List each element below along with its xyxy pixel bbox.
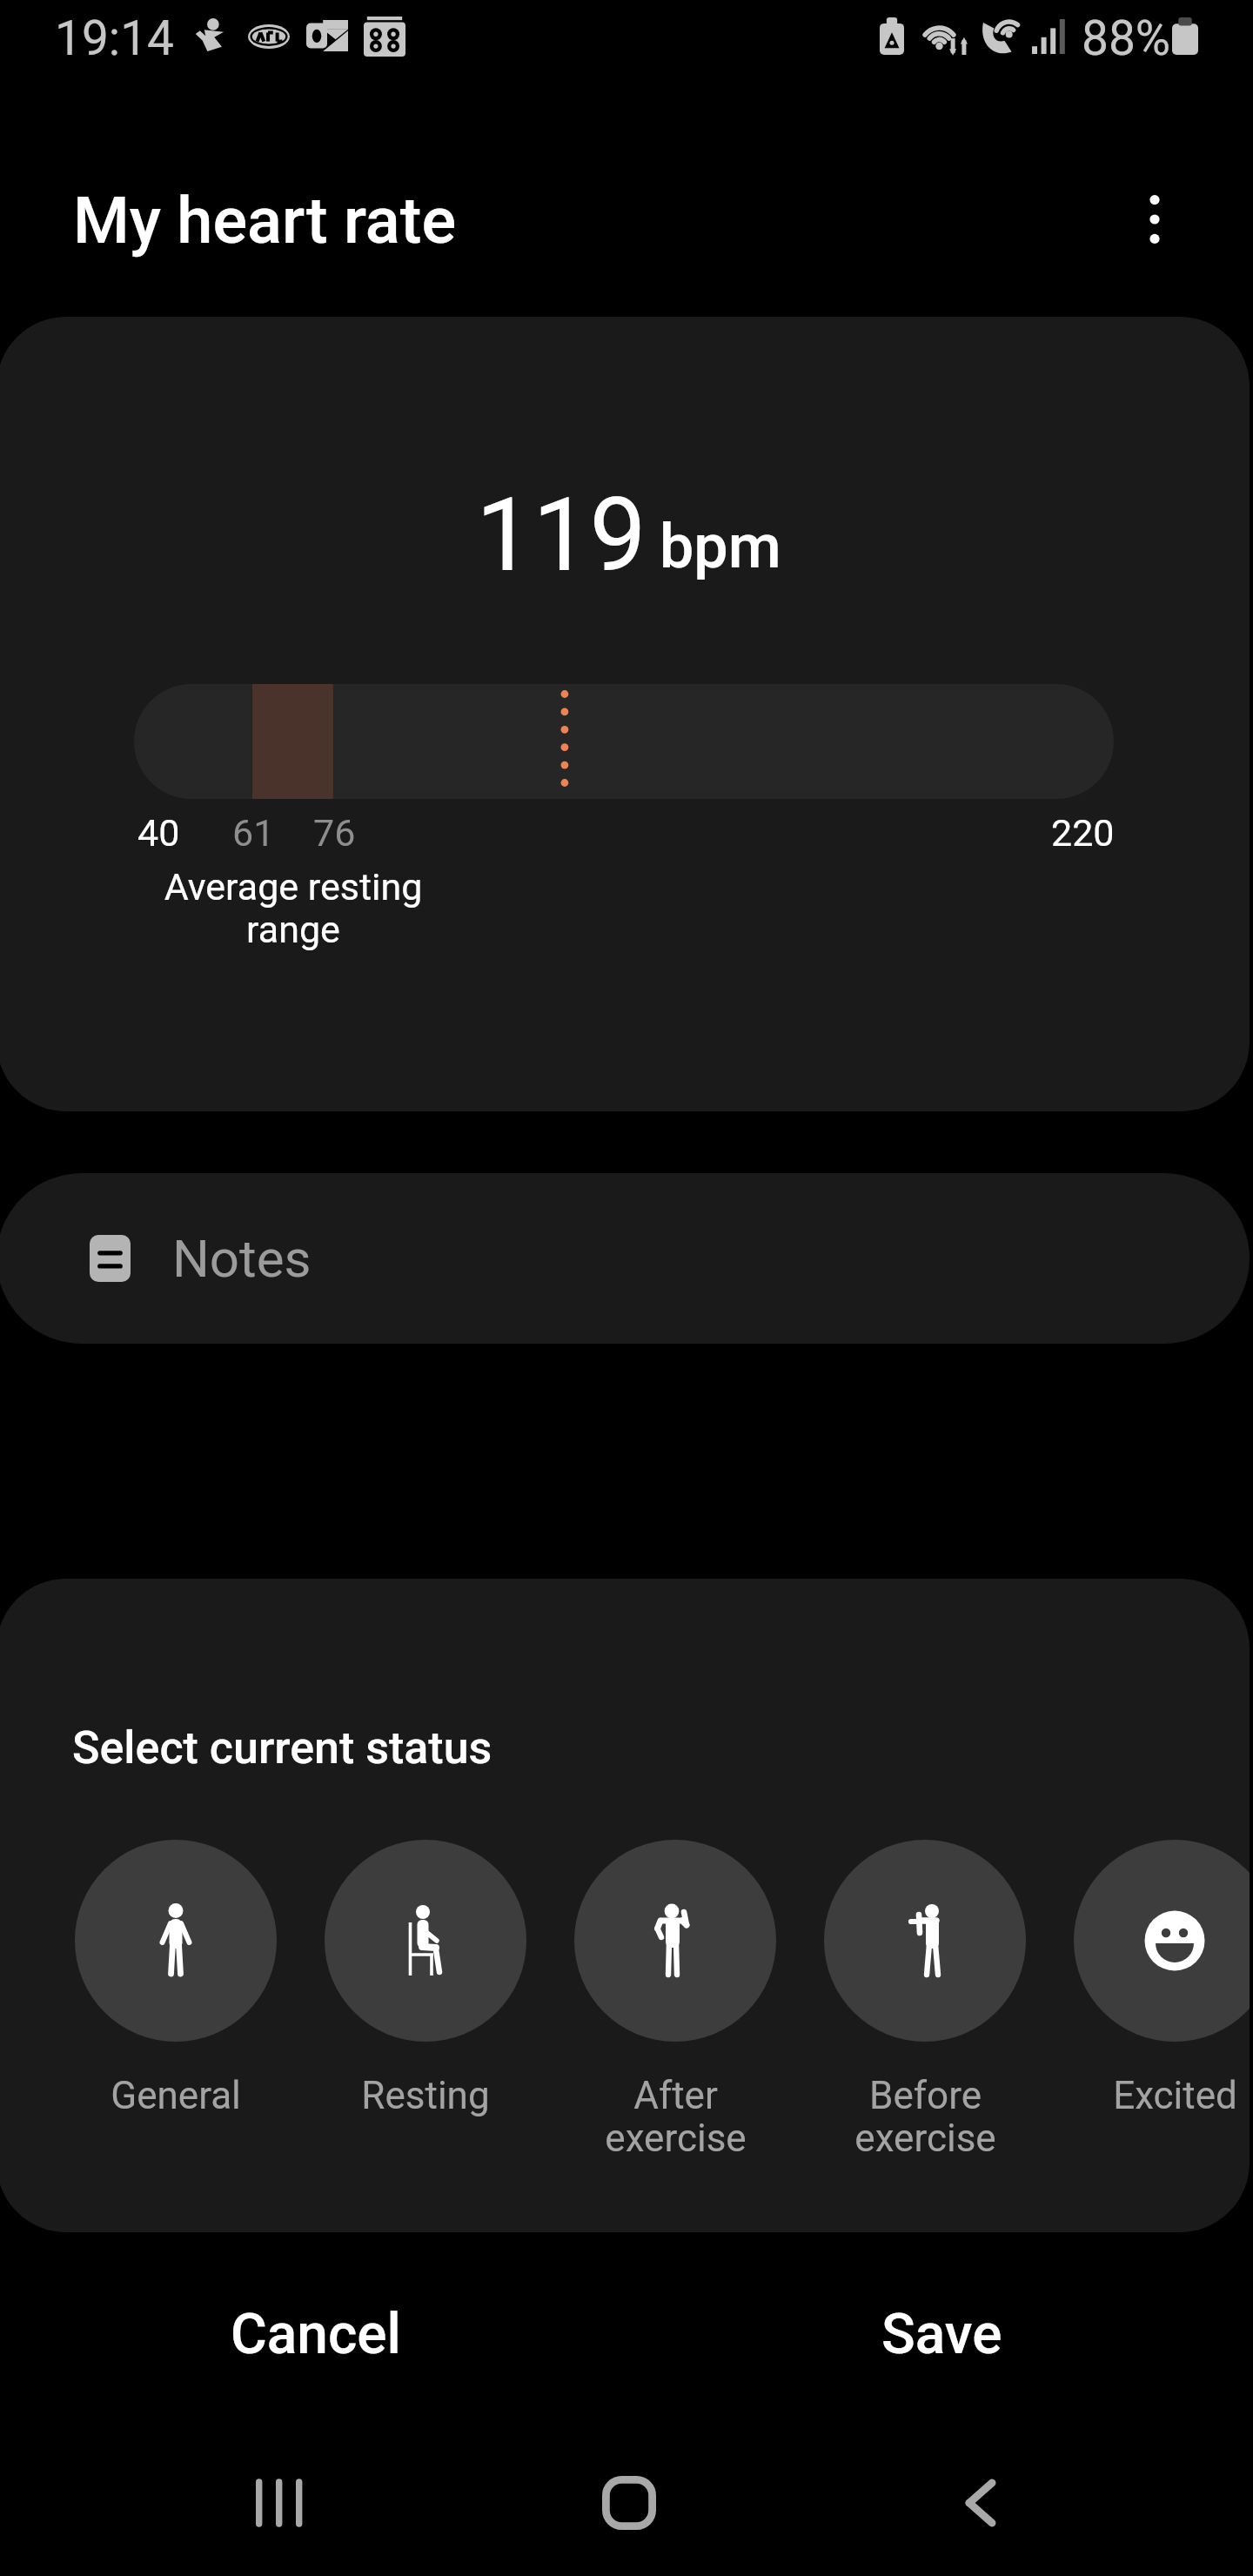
staticText: My heart rate [73,183,457,258]
staticText: After exercise [605,2073,747,2161]
button[interactable]: Recents [210,2442,349,2564]
button[interactable]: Notes [0,1173,1250,1344]
staticText: Average resting range [158,865,428,951]
button[interactable]: More options [1115,179,1195,259]
button[interactable]: General [51,1840,300,2118]
staticText: 19:14 [55,10,174,66]
staticText: Notes [172,1228,312,1289]
button[interactable]: After exercise [551,1840,800,2161]
staticText: 61 [232,811,275,855]
staticText: 40 [137,811,180,855]
button[interactable]: Cancel [116,2264,516,2404]
staticText: bpm [660,511,781,582]
button[interactable]: Back [911,2442,1050,2564]
button[interactable]: Before exercise [801,1840,1049,2161]
staticText: 76 [313,811,356,855]
staticText: 88% [1082,10,1171,66]
staticText: Resting [361,2073,490,2118]
staticText: Excited [1113,2073,1237,2118]
staticText: 220 [1051,811,1115,855]
staticText: Before exercise [854,2073,996,2161]
button[interactable]: Resting [301,1840,550,2118]
staticText: General [111,2073,241,2118]
button[interactable]: Excited [1050,1840,1250,2118]
button[interactable]: Save [741,2264,1142,2404]
staticText: Cancel [231,2302,401,2367]
staticText: Select current status [72,1721,492,1774]
staticText: Save [881,2302,1002,2367]
staticText: 119 [476,476,647,594]
button[interactable]: Home [559,2442,699,2564]
